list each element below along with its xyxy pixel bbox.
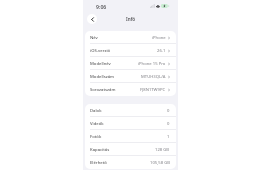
- staticText: 0: [167, 121, 170, 127]
- staticText: MTUH3QL/A: [141, 74, 166, 80]
- staticText: 0: [167, 108, 170, 114]
- button[interactable]: Modellnév: [85, 57, 176, 70]
- button[interactable]: Modellszám: [85, 70, 176, 83]
- button[interactable]: Fotók: [85, 130, 176, 143]
- staticText: iPhone 15 Pro: [138, 61, 166, 67]
- staticText: Sorozatszám: [90, 87, 116, 93]
- button[interactable]: iOS-verzió: [85, 44, 176, 57]
- button[interactable]: Dalok: [85, 104, 176, 117]
- button[interactable]: Videók: [85, 117, 176, 130]
- button[interactable]: Név: [85, 31, 176, 44]
- staticText: Kapacitás: [90, 147, 110, 153]
- staticText: Infó: [126, 16, 136, 22]
- staticText: 128 GB: [155, 147, 170, 153]
- button[interactable]: Kapacitás: [85, 143, 176, 156]
- staticText: iOS-verzió: [90, 48, 111, 54]
- staticText: Név: [90, 35, 98, 41]
- staticText: Elérhető: [90, 160, 107, 166]
- staticText: 9:06: [96, 3, 107, 10]
- staticText: Fotók: [90, 134, 102, 140]
- staticText: 26.1: [157, 48, 166, 54]
- staticText: FJ8N1TW9PC: [140, 87, 166, 93]
- staticText: 105,58 GB: [150, 160, 170, 166]
- staticText: 1: [167, 134, 170, 140]
- staticText: Modellnév: [90, 61, 111, 67]
- staticText: Videók: [90, 121, 104, 127]
- staticText: Modellszám: [90, 74, 115, 80]
- staticText: iPhone: [152, 35, 166, 41]
- staticText: Dalok: [90, 108, 102, 114]
- button[interactable]: Elérhető: [85, 156, 176, 169]
- button[interactable]: Back: [87, 14, 97, 24]
- button[interactable]: Sorozatszám: [85, 83, 176, 96]
